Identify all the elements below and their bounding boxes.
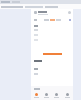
button[interactable]: Nav (51, 93, 62, 98)
button[interactable]: Nav (62, 93, 73, 98)
button[interactable]: Nav (41, 93, 51, 98)
button[interactable]: Nav (31, 93, 41, 98)
